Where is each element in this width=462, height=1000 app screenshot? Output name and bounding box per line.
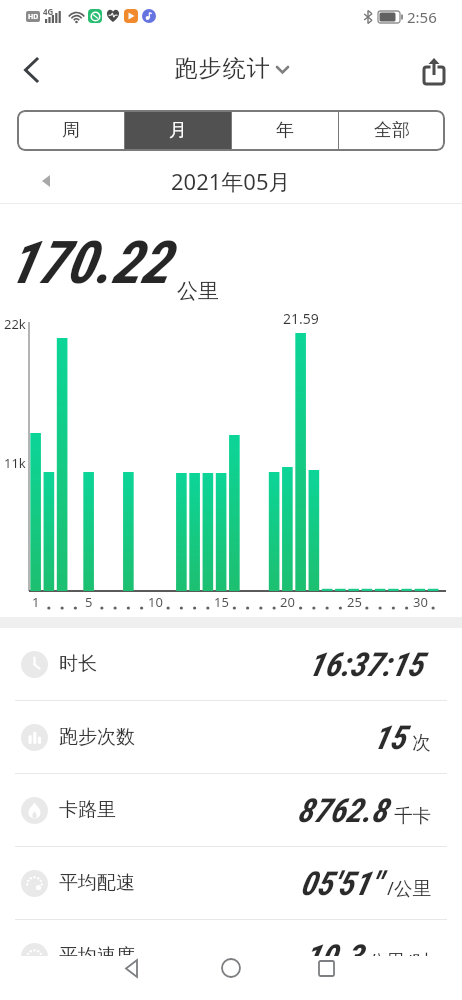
staticText: 千卡 <box>394 804 431 827</box>
staticText: 周 <box>62 119 80 142</box>
staticText: 16:37:15 <box>308 645 424 684</box>
staticText: 月 <box>169 119 187 142</box>
staticText: 15 <box>214 593 229 611</box>
staticText: 时长 <box>59 652 97 676</box>
staticText: 平均配速 <box>59 871 135 895</box>
button[interactable]: 跑步统计 <box>174 54 289 83</box>
staticText: 全部 <box>374 119 410 142</box>
button[interactable] <box>112 956 152 980</box>
button[interactable] <box>12 47 52 87</box>
button[interactable] <box>33 162 61 190</box>
staticText: 次 <box>412 731 431 754</box>
staticText: 10.3 <box>304 937 362 976</box>
staticText: 4G <box>43 6 54 17</box>
staticText: 2021年05月 <box>171 166 291 196</box>
staticText: 8762.8 <box>297 791 388 830</box>
button[interactable] <box>414 53 454 93</box>
button[interactable]: 平均速度 <box>0 920 462 992</box>
staticText: 公里/时 <box>368 948 431 973</box>
staticText: 25 <box>347 593 362 611</box>
staticText: 跑步次数 <box>59 725 135 749</box>
staticText: 5 <box>85 593 93 611</box>
staticText: 2:56 <box>407 7 437 27</box>
button[interactable]: 月 <box>125 110 231 151</box>
button[interactable] <box>306 956 346 980</box>
staticText: 10 <box>148 593 163 611</box>
button[interactable]: 跑步次数 <box>0 701 462 773</box>
staticText: HD <box>28 12 39 22</box>
staticText: 1 <box>32 593 40 611</box>
staticText: 170.22 <box>8 228 170 297</box>
staticText: /公里 <box>387 875 431 900</box>
staticText: 30 <box>413 593 428 611</box>
staticText: 跑步统计 <box>174 54 270 83</box>
staticText: 15 <box>373 718 406 757</box>
staticText: 平均速度 <box>59 944 135 968</box>
staticText: 公里 <box>177 278 219 304</box>
button[interactable]: 平均配速 <box>0 847 462 919</box>
button[interactable]: 卡路里 <box>0 774 462 846</box>
button[interactable]: 周 <box>17 110 124 151</box>
staticText: 05'51" <box>300 864 381 903</box>
staticText: 20 <box>280 593 295 611</box>
staticText: 年 <box>276 119 294 142</box>
staticText: 21.59 <box>283 309 319 328</box>
staticText: 11k <box>4 454 26 472</box>
button[interactable]: 时长 <box>0 628 462 700</box>
button[interactable] <box>211 956 251 980</box>
button[interactable]: 全部 <box>339 110 445 151</box>
staticText: 卡路里 <box>59 798 116 822</box>
button[interactable]: 年 <box>232 110 338 151</box>
staticText: 22k <box>4 315 26 333</box>
